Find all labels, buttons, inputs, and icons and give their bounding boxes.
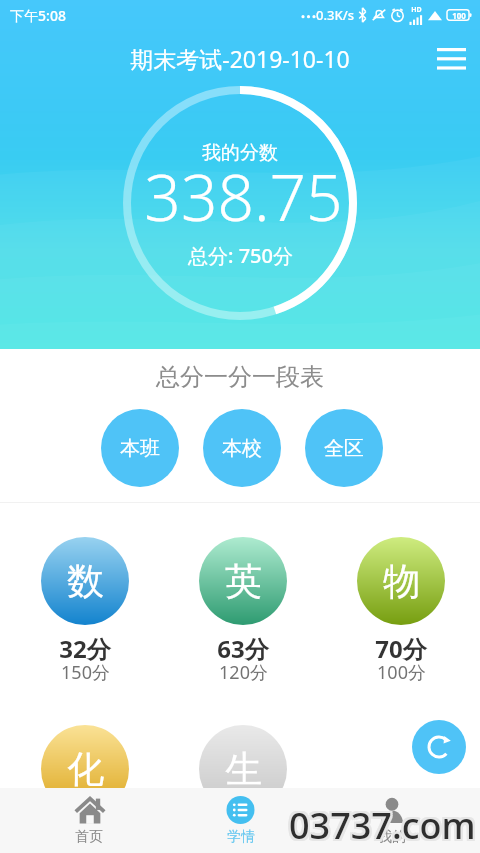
staticText: 我的 <box>378 828 406 846</box>
button[interactable]: 我的 <box>316 788 467 853</box>
staticText: 数 <box>67 558 104 605</box>
staticText: 下午5:08 <box>10 6 66 25</box>
staticText: 物 <box>383 558 420 605</box>
staticText: 03737.com <box>289 799 476 848</box>
staticText: 100 <box>452 10 466 21</box>
staticText: 首页 <box>75 828 103 846</box>
staticText: 03737.com <box>291 803 478 852</box>
staticText: 03737.com <box>291 799 478 848</box>
button[interactable]: 化 <box>6 725 164 813</box>
staticText: 32分 <box>59 632 111 665</box>
button[interactable]: 生 <box>164 725 322 813</box>
staticText: 本班 <box>120 436 160 461</box>
staticText: 全区 <box>324 436 364 461</box>
button[interactable]: 首页 <box>13 788 165 853</box>
staticText: 英 <box>225 558 262 605</box>
staticText: 03737.com <box>291 801 478 850</box>
button[interactable]: 物 <box>322 537 480 690</box>
staticText: 03737.com <box>287 799 474 848</box>
button[interactable]: 数 <box>6 537 164 690</box>
staticText: 338.75 <box>144 153 343 240</box>
staticText: 150分 <box>61 660 110 685</box>
button[interactable]: 全区 <box>305 409 383 487</box>
button[interactable]: Menu <box>422 33 480 83</box>
staticText: 总分: 750分 <box>188 242 293 269</box>
button[interactable]: 本校 <box>203 409 281 487</box>
button[interactable]: 本班 <box>101 409 179 487</box>
staticText: 化 <box>67 746 104 793</box>
staticText: 70分 <box>375 632 427 665</box>
staticText: 总分一分一段表 <box>156 362 324 392</box>
staticText: 63分 <box>217 632 269 665</box>
staticText: 03737.com <box>289 803 476 852</box>
button[interactable]: 学情 <box>165 788 316 853</box>
staticText: 学情 <box>227 828 255 846</box>
staticText: 我的分数 <box>202 141 278 165</box>
staticText: 03737.com <box>289 801 476 850</box>
staticText: 120分 <box>219 660 268 685</box>
button[interactable]: 英 <box>164 537 322 690</box>
staticText: 0.3K/s <box>316 6 354 24</box>
staticText: HD <box>411 5 422 15</box>
staticText: 100分 <box>377 660 426 685</box>
staticText: 03737.com <box>287 803 474 852</box>
button[interactable]: Refresh <box>412 720 466 774</box>
staticText: 期末考试-2019-10-10 <box>130 43 350 74</box>
staticText: 03737.com <box>287 801 474 850</box>
staticText: 本校 <box>222 436 262 461</box>
staticText: 生 <box>225 746 262 793</box>
